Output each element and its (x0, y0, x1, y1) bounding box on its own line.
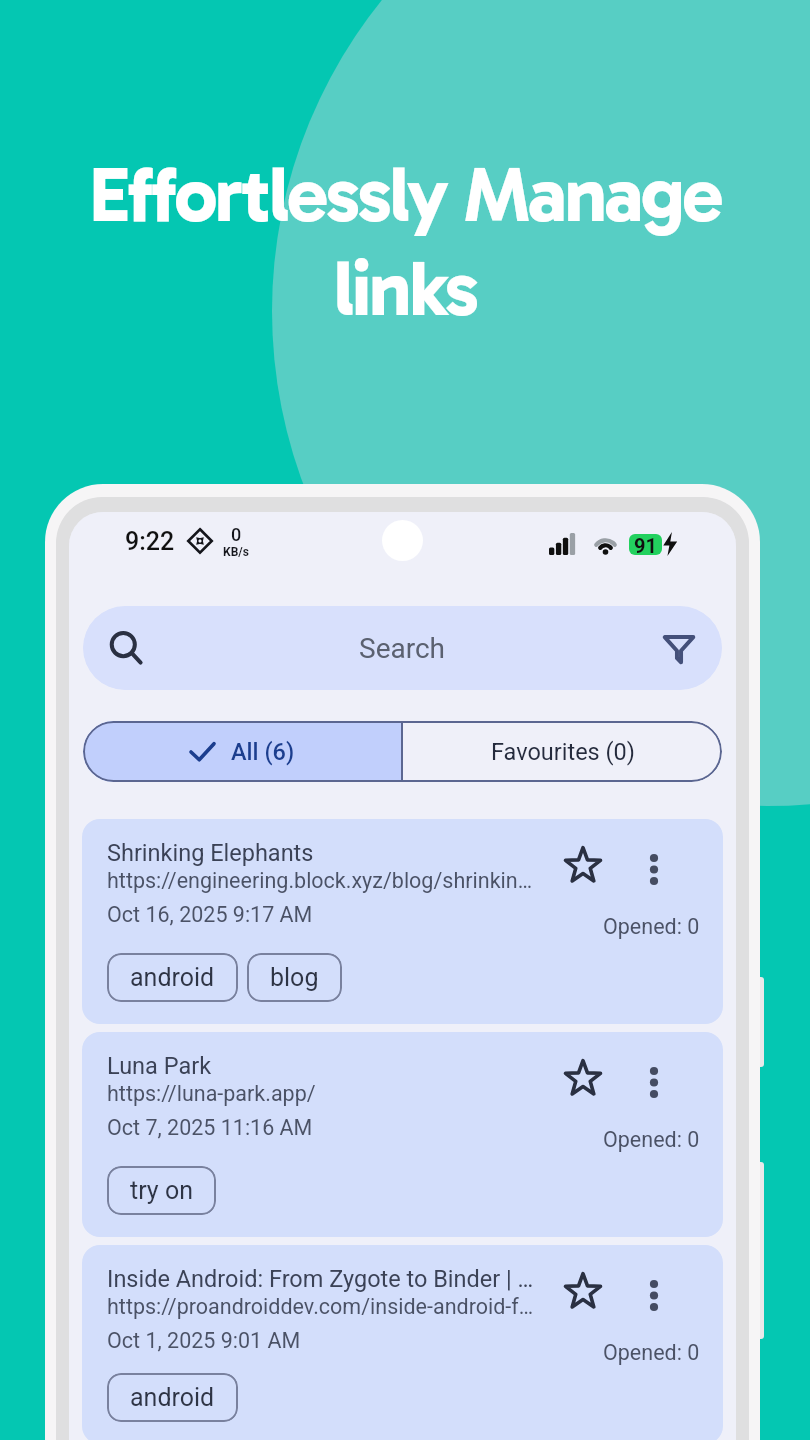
staticText: try on (130, 1176, 193, 1205)
button[interactable]: Favourite (563, 846, 603, 886)
button[interactable]: Inside Android: From Zygote to Binder | … (82, 1245, 723, 1440)
staticText: https://engineering.block.xyz/blog/shrin… (107, 868, 539, 893)
staticText: 0 (231, 524, 242, 545)
button[interactable]: Shrinking Elephants (82, 819, 723, 1024)
staticText: Shrinking Elephants (107, 839, 314, 867)
staticText: Search (359, 632, 446, 665)
staticText: Oct 16, 2025 9:17 AM (107, 902, 313, 927)
button[interactable]: try on (107, 1166, 216, 1215)
button[interactable]: Favourite (563, 1059, 603, 1099)
staticText: Favourites (0) (491, 738, 635, 766)
button[interactable]: All (6) (83, 721, 401, 782)
staticText: Opened: 0 (603, 1340, 700, 1365)
button[interactable]: Favourite (563, 1272, 603, 1312)
other: Search (109, 631, 143, 665)
staticText: Luna Park (107, 1052, 212, 1080)
staticText: https://luna-park.app/ (107, 1081, 316, 1106)
button[interactable]: android (107, 953, 238, 1002)
staticText: KB/s (223, 545, 249, 559)
staticText: android (130, 963, 215, 992)
staticText: https://proandroiddev.com/inside-android… (107, 1294, 539, 1319)
staticText: Opened: 0 (603, 1127, 700, 1152)
staticText: Oct 1, 2025 9:01 AM (107, 1328, 301, 1353)
button[interactable]: Favourites (0) (403, 721, 722, 782)
staticText: All (6) (231, 738, 295, 766)
staticText: Effortlessly Manage links (89, 149, 721, 335)
button[interactable]: More options (644, 1059, 664, 1099)
staticText: 91 (634, 534, 657, 555)
button[interactable]: More options (644, 846, 664, 886)
other: Filter (662, 631, 696, 665)
button[interactable]: android (107, 1373, 238, 1422)
staticText: Inside Android: From Zygote to Binder | … (107, 1265, 539, 1293)
staticText: android (130, 1383, 215, 1412)
staticText: 9:22 (125, 527, 175, 556)
button[interactable]: blog (247, 953, 342, 1002)
button[interactable]: Search (83, 606, 722, 690)
button[interactable]: Luna Park (82, 1032, 723, 1237)
staticText: Oct 7, 2025 11:16 AM (107, 1115, 313, 1140)
staticText: Opened: 0 (603, 914, 700, 939)
button[interactable]: More options (644, 1272, 664, 1312)
staticText: blog (270, 963, 319, 992)
